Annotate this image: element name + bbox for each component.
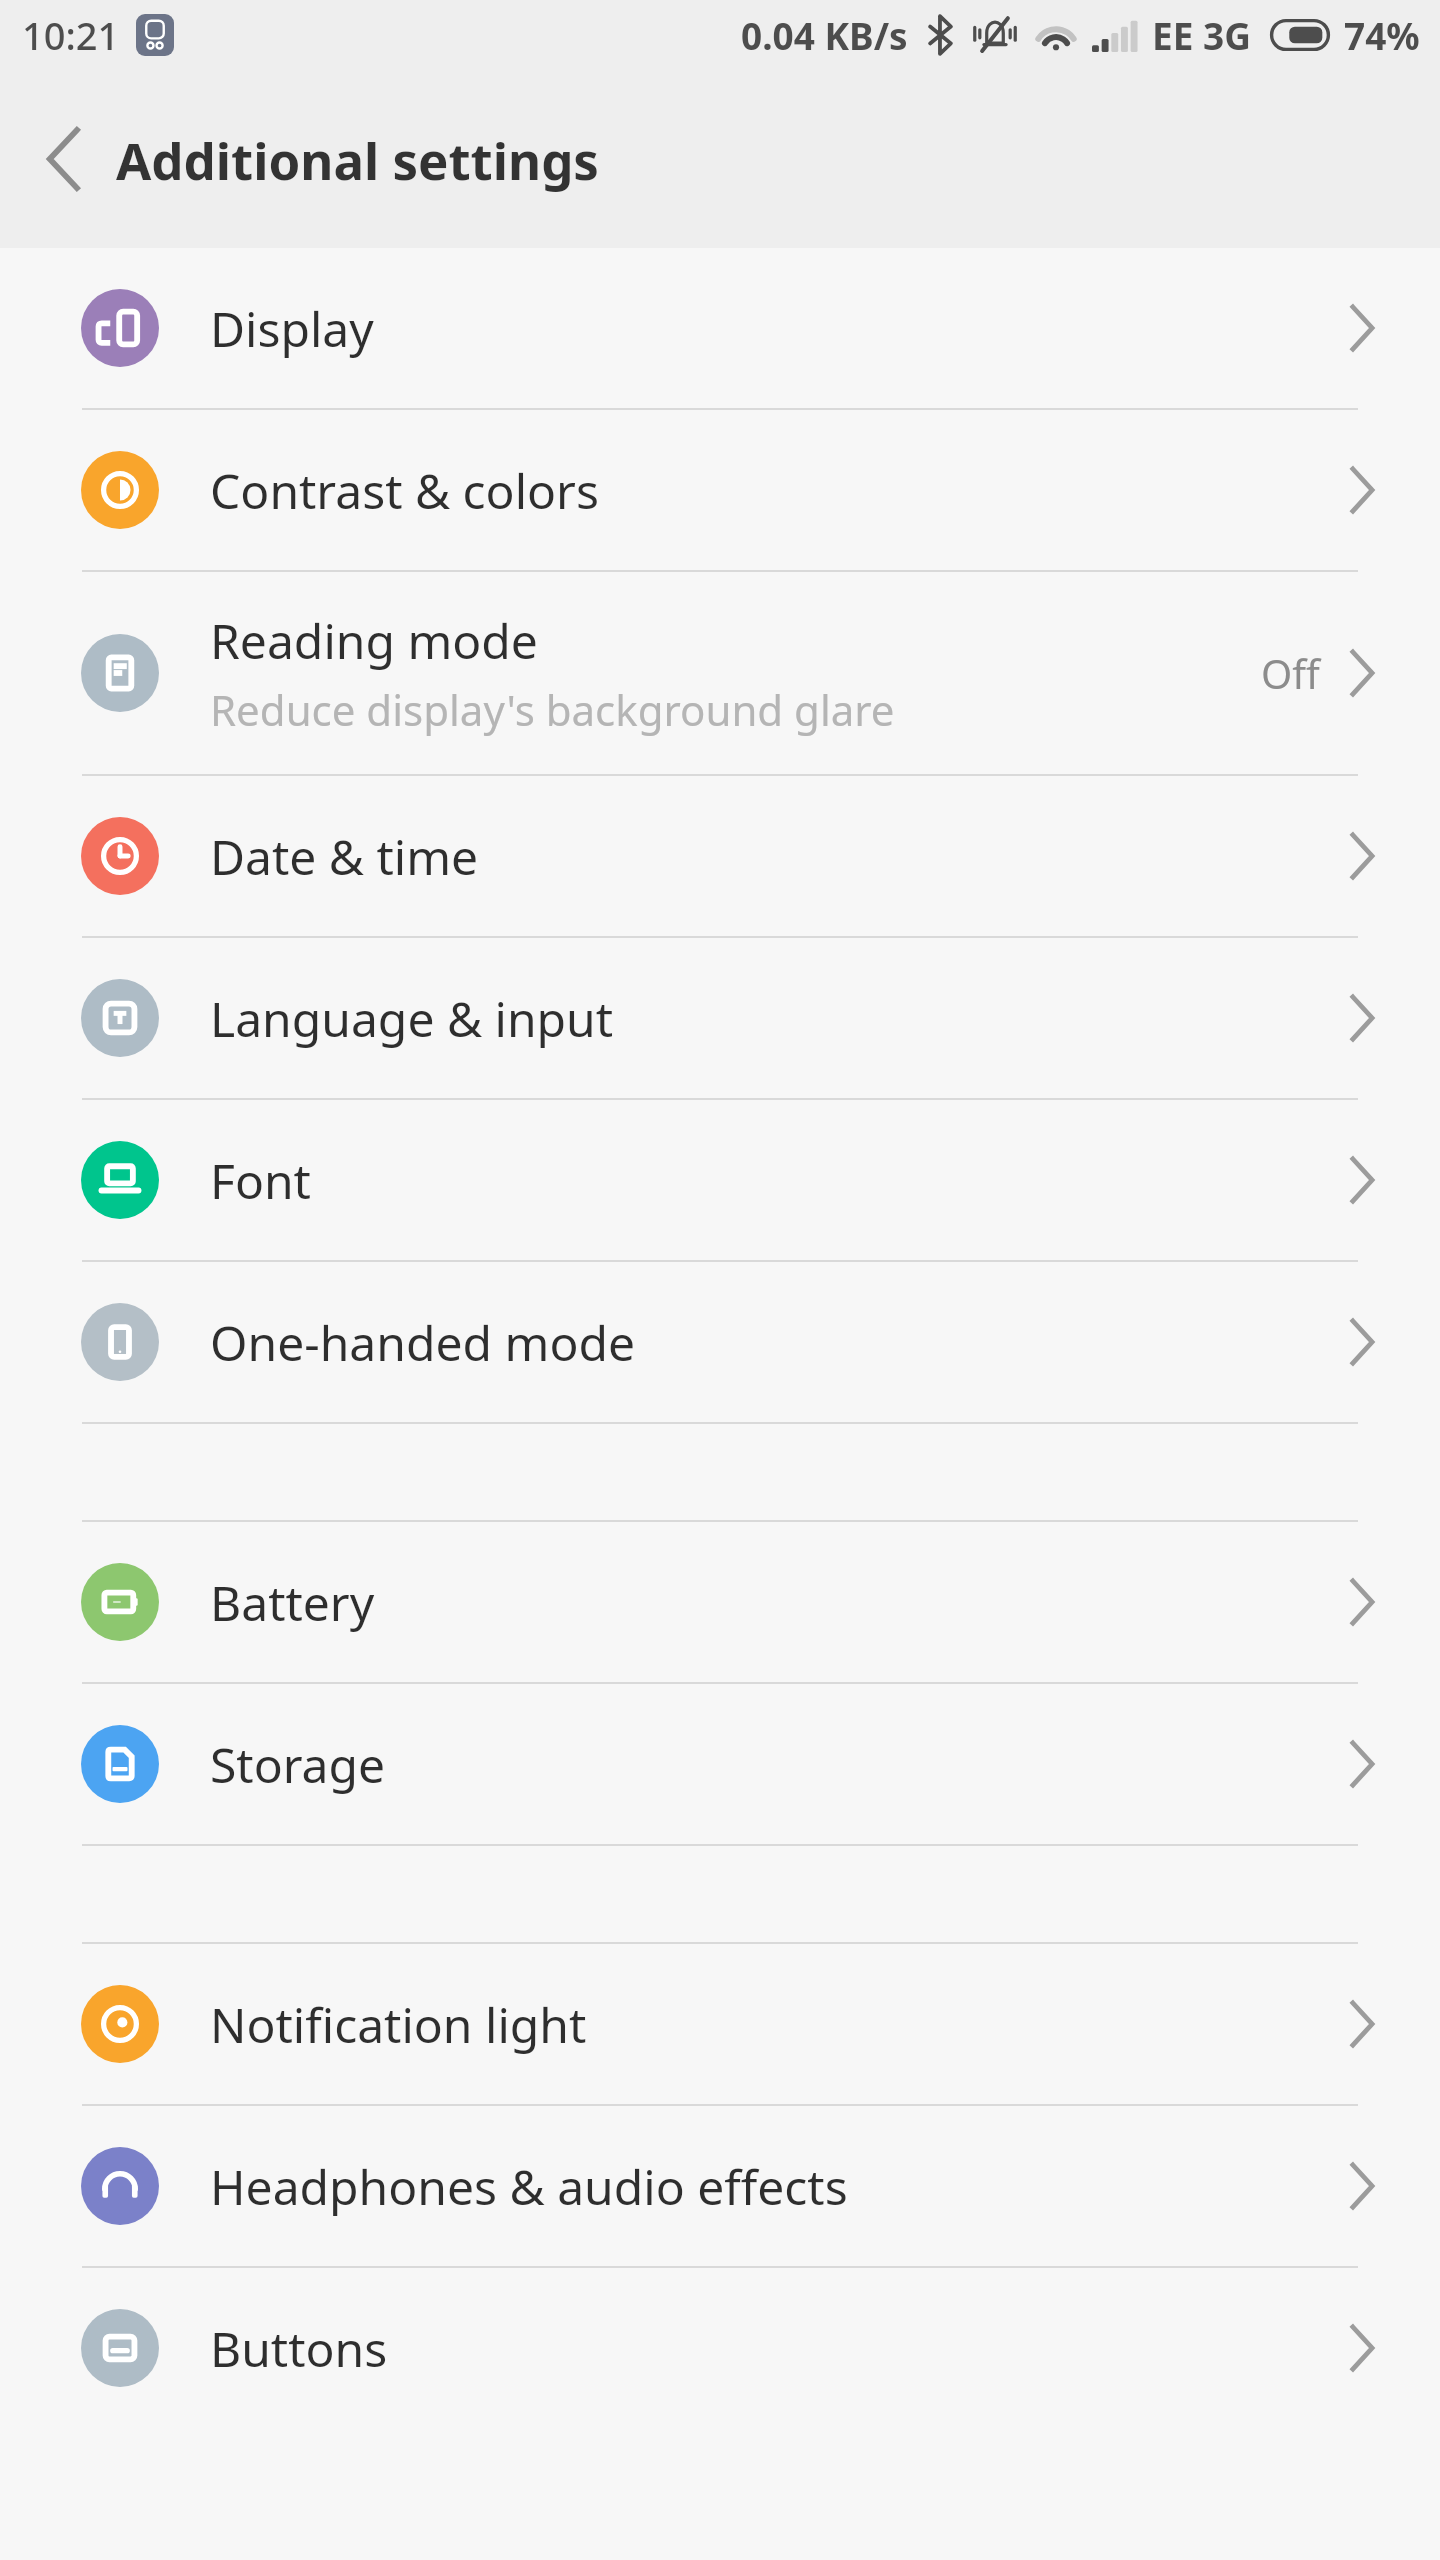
button[interactable]: One-handed mode bbox=[0, 1262, 1440, 1422]
staticText: Additional settings bbox=[116, 125, 599, 194]
staticText: 0.04 KB/s bbox=[741, 10, 908, 60]
staticText: Reduce display's background glare bbox=[210, 681, 895, 738]
staticText: Contrast & colors bbox=[210, 458, 599, 523]
button[interactable]: Font bbox=[0, 1100, 1440, 1260]
staticText: Notification light bbox=[210, 1992, 587, 2057]
staticText: One-handed mode bbox=[210, 1310, 636, 1375]
staticText: Buttons bbox=[210, 2316, 388, 2381]
button[interactable]: Battery bbox=[0, 1522, 1440, 1682]
button[interactable]: Headphones & audio effects bbox=[0, 2106, 1440, 2266]
staticText: Off bbox=[1261, 646, 1320, 700]
button[interactable]: Buttons bbox=[0, 2268, 1440, 2428]
button[interactable]: Display bbox=[0, 248, 1440, 408]
button[interactable]: Reading mode bbox=[0, 572, 1440, 774]
button[interactable]: Back bbox=[14, 109, 114, 209]
staticText: EE 3G bbox=[1152, 10, 1252, 60]
button[interactable]: Storage bbox=[0, 1684, 1440, 1844]
button[interactable]: Contrast & colors bbox=[0, 410, 1440, 570]
staticText: Display bbox=[210, 296, 374, 361]
staticText: 10:21 bbox=[22, 9, 120, 61]
staticText: Storage bbox=[210, 1732, 386, 1797]
button[interactable]: Notification light bbox=[0, 1944, 1440, 2104]
button[interactable]: Date & time bbox=[0, 776, 1440, 936]
staticText: Headphones & audio effects bbox=[210, 2154, 848, 2219]
staticText: Reading mode bbox=[210, 608, 538, 673]
staticText: Date & time bbox=[210, 824, 479, 889]
button[interactable]: Language & input bbox=[0, 938, 1440, 1098]
staticText: Font bbox=[210, 1148, 311, 1213]
staticText: 74% bbox=[1344, 10, 1420, 60]
staticText: Battery bbox=[210, 1570, 375, 1635]
staticText: Language & input bbox=[210, 986, 614, 1051]
